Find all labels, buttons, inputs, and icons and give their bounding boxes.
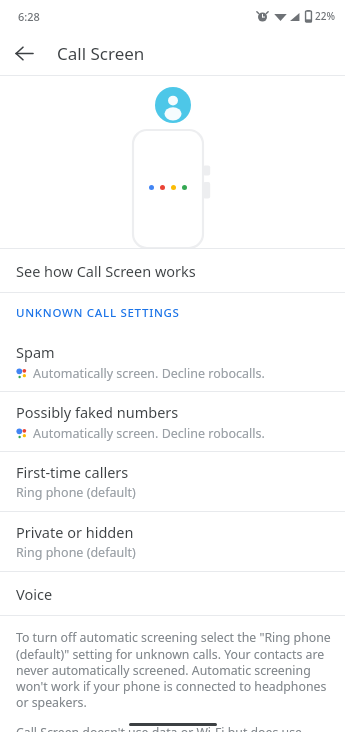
button[interactable]: Back [0,32,48,75]
staticText: Ring phone (default) [16,544,136,561]
staticText: 6:28 [18,9,40,24]
staticText: Automatically screen. Decline robocalls. [33,365,265,382]
button[interactable]: Spam [0,332,345,391]
staticText: Ring phone (default) [16,484,136,501]
staticText: Automatically screen. Decline robocalls. [33,425,265,442]
staticText: Spam [16,342,55,362]
staticText: First-time callers [16,462,129,482]
staticText: Private or hidden [16,522,134,542]
staticText: Call Screen doesn't use data or Wi-Fi bu… [16,724,331,732]
staticText: Voice [16,584,53,604]
button[interactable]: Private or hidden [0,512,345,571]
button[interactable]: First-time callers [0,452,345,511]
staticText: To turn off automatic screening select t… [16,629,331,711]
button[interactable]: Possibly faked numbers [0,392,345,451]
staticText: Possibly faked numbers [16,402,179,422]
button[interactable]: Voice [0,572,345,615]
staticText: Call Screen [57,42,145,65]
staticText: 22% [315,9,335,23]
button[interactable]: See how Call Screen works [0,249,345,292]
staticText: See how Call Screen works [16,261,196,281]
staticText: UNKNOWN CALL SETTINGS [16,305,180,321]
